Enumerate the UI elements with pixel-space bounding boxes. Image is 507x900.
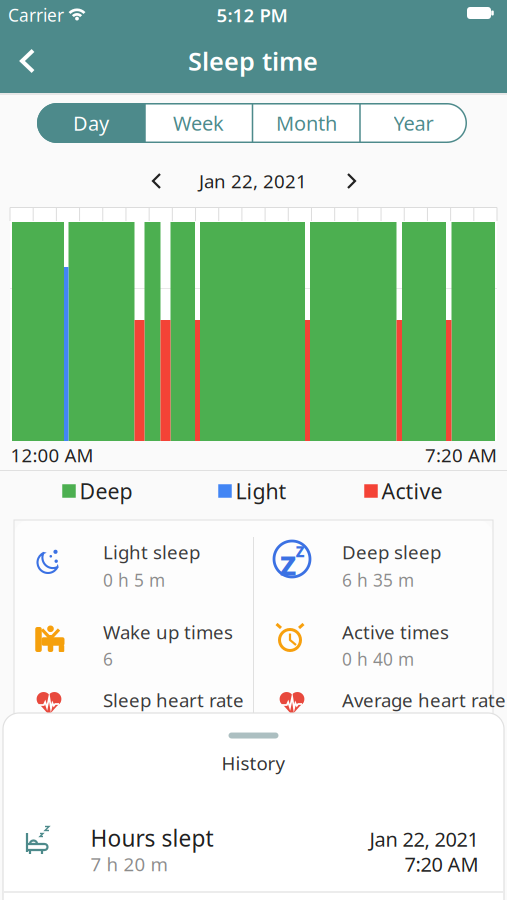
staticText: Month [276,110,337,136]
staticText: Active times [342,620,449,644]
staticText: 6 h 35 m [342,568,414,591]
button[interactable] [145,104,251,142]
button[interactable]: Hours slept [3,810,503,890]
button[interactable] [329,164,373,198]
staticText: 7 h 20 m [90,852,167,876]
staticText: Deep sleep [342,540,441,564]
staticText: Sleep time [188,44,318,78]
staticText: Day [73,110,109,136]
staticText: Carrier [8,3,64,26]
staticText: Jan 22, 2021 [199,169,307,193]
button[interactable] [228,732,278,738]
button[interactable] [253,104,359,142]
staticText: Deep [79,477,132,505]
staticText: History [221,751,285,775]
staticText: Week [173,110,224,136]
staticText: Sleep heart rate [103,688,244,712]
staticText: Year [393,110,433,136]
staticText: Light sleep [103,540,200,564]
button[interactable] [37,103,145,143]
staticText: z [279,539,296,585]
button[interactable] [135,164,179,198]
button[interactable] [6,39,50,83]
staticText: 7:20 AM [404,851,478,877]
staticText: Hours slept [90,823,213,853]
staticText: Light [235,477,286,505]
button[interactable] [360,103,467,143]
staticText: 6 [103,647,113,670]
staticText: Jan 22, 2021 [369,826,478,852]
staticText: z [295,538,304,562]
staticText: 7:20 AM [425,443,497,467]
staticText: Active [381,477,442,505]
staticText: Average heart rate [342,688,506,712]
staticText: 5:12 PM [216,3,287,27]
staticText: 0 h 40 m [342,647,414,670]
staticText: Wake up times [103,620,233,644]
staticText: 0 h 5 m [103,568,165,591]
staticText: 12:00 AM [10,443,93,467]
